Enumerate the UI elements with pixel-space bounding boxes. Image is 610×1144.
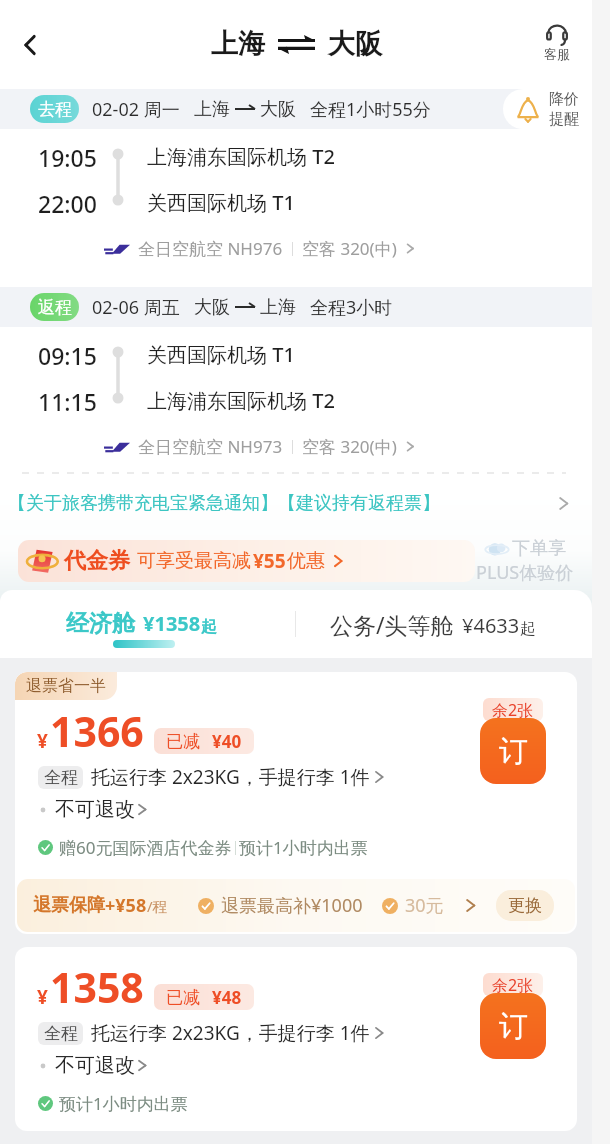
staticText: 11:15 bbox=[38, 386, 97, 417]
staticText: 02-06 周五 bbox=[92, 295, 180, 320]
staticText: 全日空航空 NH976 bbox=[138, 237, 283, 260]
staticText: ¥40 bbox=[212, 730, 242, 753]
button[interactable]: 更换 bbox=[496, 890, 554, 921]
staticText: 上海 bbox=[194, 98, 230, 121]
staticText: 大阪 bbox=[194, 296, 230, 319]
staticText: 不可退改 bbox=[55, 797, 135, 822]
staticText: 大阪 bbox=[328, 27, 382, 61]
staticText: 已减 bbox=[166, 987, 200, 1008]
button[interactable]: 全日空航空 NH976 bbox=[104, 237, 415, 260]
staticText: 公务/头等舱 bbox=[330, 609, 454, 640]
staticText: 下单享 bbox=[512, 537, 566, 560]
staticText: 退票省一半 bbox=[26, 676, 106, 696]
button[interactable]: 客服 Customer service bbox=[544, 23, 570, 62]
staticText: ¥4633 bbox=[462, 612, 520, 639]
staticText: 上海浦东国际机场 T2 bbox=[147, 387, 335, 414]
staticText: 空客 320(中) bbox=[302, 435, 397, 458]
button[interactable]: 降价 bbox=[503, 89, 592, 129]
staticText: ¥48 bbox=[212, 986, 242, 1009]
staticText: 关西国际机场 T1 bbox=[147, 341, 295, 368]
staticText: 02-02 周一 bbox=[92, 97, 180, 122]
staticText: 空客 320(中) bbox=[302, 237, 397, 260]
staticText: 可享受最高减 bbox=[137, 549, 251, 573]
staticText: 09:15 bbox=[38, 340, 97, 371]
staticText: 19:05 bbox=[38, 142, 97, 173]
button[interactable]: 全日空航空 NH973 bbox=[104, 435, 415, 458]
staticText: 托运行李 2x23KG，手提行李 1件 bbox=[91, 764, 370, 790]
staticText: 22:00 bbox=[38, 188, 97, 219]
staticText: 全日空航空 NH973 bbox=[138, 435, 283, 458]
staticText: 更换 bbox=[508, 895, 542, 916]
button[interactable]: 订 bbox=[480, 718, 546, 784]
staticText: 全程 bbox=[44, 767, 78, 788]
staticText: 上海浦东国际机场 T2 bbox=[147, 143, 335, 170]
staticText: 优惠 bbox=[287, 549, 325, 573]
staticText: 托运行李 2x23KG，手提行李 1件 bbox=[91, 1020, 370, 1046]
staticText: 【关于旅客携带充电宝紧急通知】【建议持有返程票】 bbox=[8, 492, 440, 515]
staticText: +¥58 bbox=[105, 893, 147, 918]
staticText: 全程1小时55分 bbox=[310, 97, 431, 122]
staticText: 预计1小时内出票 bbox=[59, 1092, 188, 1115]
button[interactable]: 订 bbox=[480, 993, 546, 1059]
staticText: 订 bbox=[499, 1008, 528, 1045]
button[interactable]: 【关于旅客携带充电宝紧急通知】【建议持有返程票】 bbox=[0, 474, 592, 532]
staticText: 30元 bbox=[405, 893, 444, 918]
staticText: 上海 bbox=[211, 27, 265, 61]
staticText: 关西国际机场 T1 bbox=[147, 189, 295, 216]
button[interactable]: 经济舱 bbox=[0, 590, 296, 658]
staticText: 提醒 bbox=[549, 110, 579, 129]
button[interactable]: Back bbox=[6, 21, 54, 69]
staticText: 退票保障 bbox=[33, 894, 105, 917]
staticText: ¥ bbox=[37, 728, 48, 754]
staticText: PLUS体验价 bbox=[476, 560, 574, 585]
staticText: 余2张 bbox=[492, 974, 534, 996]
staticText: 订 bbox=[499, 733, 528, 770]
staticText: 起 bbox=[201, 617, 217, 637]
staticText: 1358 bbox=[50, 959, 144, 1015]
staticText: 客服 bbox=[544, 46, 570, 62]
staticText: 全程 bbox=[44, 1023, 78, 1044]
staticText: 去程 bbox=[38, 99, 72, 120]
staticText: 降价 bbox=[549, 90, 579, 109]
staticText: 代金券 bbox=[64, 547, 130, 575]
staticText: 起 bbox=[520, 619, 536, 639]
button[interactable]: 代金券 bbox=[18, 540, 475, 582]
staticText: /程 bbox=[147, 896, 168, 916]
staticText: ¥1358 bbox=[143, 610, 201, 637]
staticText: 赠60元国际酒店代金券 bbox=[59, 836, 232, 859]
button[interactable]: ¥ bbox=[15, 947, 577, 1131]
staticText: 大阪 bbox=[260, 98, 296, 121]
staticText: 预计1小时内出票 bbox=[239, 836, 368, 859]
button[interactable]: 公务/头等舱 bbox=[296, 590, 592, 658]
staticText: 余2张 bbox=[492, 699, 534, 721]
staticText: 全程3小时 bbox=[310, 295, 393, 320]
staticText: 返程 bbox=[38, 297, 72, 318]
staticText: ¥55 bbox=[253, 548, 286, 574]
staticText: ¥ bbox=[37, 984, 48, 1010]
staticText: 经济舱 bbox=[66, 609, 135, 638]
staticText: 已减 bbox=[166, 731, 200, 752]
staticText: 退票最高补¥1000 bbox=[221, 893, 363, 918]
staticText: 上海 bbox=[260, 296, 296, 319]
staticText: 不可退改 bbox=[55, 1053, 135, 1078]
staticText: 1366 bbox=[50, 703, 144, 759]
button[interactable]: 退票省一半 bbox=[15, 672, 577, 934]
button[interactable]: 退票保障 bbox=[17, 879, 575, 932]
